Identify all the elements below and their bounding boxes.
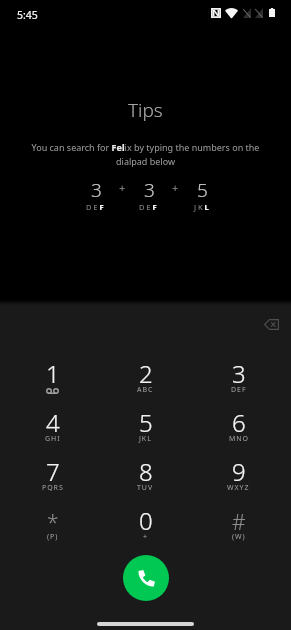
staticText: PQRS <box>42 483 64 493</box>
button[interactable]: 4 <box>6 406 99 455</box>
staticText: + <box>172 180 179 195</box>
staticText: # <box>232 508 246 537</box>
staticText: 3 <box>91 177 102 203</box>
button[interactable]: 0 <box>99 504 192 553</box>
staticText: 4 <box>46 406 60 439</box>
staticText: DEF <box>86 202 106 212</box>
staticText: 8 <box>139 455 153 488</box>
staticText: 9 <box>232 455 246 488</box>
button[interactable]: 5 <box>99 406 192 455</box>
staticText: (W) <box>232 532 246 542</box>
staticText: DEF <box>231 385 247 395</box>
staticText: + <box>143 532 148 542</box>
button[interactable]: Backspace <box>257 310 285 338</box>
staticText: DEF <box>139 202 159 212</box>
button[interactable]: # <box>192 504 285 553</box>
staticText: 3 <box>232 357 246 390</box>
button[interactable]: 2 <box>99 357 192 406</box>
staticText: GHI <box>45 434 61 444</box>
staticText: WXYZ <box>227 483 250 493</box>
staticText: 3 <box>144 177 155 203</box>
staticText: 5:45 <box>17 8 38 22</box>
button[interactable]: 3 <box>192 357 285 406</box>
staticText: 0 <box>139 504 153 537</box>
staticText: 5 <box>197 177 208 203</box>
staticText: (P) <box>47 532 59 542</box>
staticText: 5 <box>139 406 153 439</box>
button[interactable]: * <box>6 504 99 553</box>
staticText: 1 <box>46 357 60 390</box>
button[interactable]: 8 <box>99 455 192 504</box>
staticText: You can search for Felix by typing the n… <box>28 141 263 168</box>
staticText: 7 <box>46 455 60 488</box>
staticText: 6 <box>232 406 246 439</box>
staticText: + <box>119 180 126 195</box>
staticText: TUV <box>137 483 154 493</box>
staticText: 2 <box>139 357 153 390</box>
button[interactable]: 7 <box>6 455 99 504</box>
button[interactable]: 9 <box>192 455 285 504</box>
staticText: ABC <box>137 385 154 395</box>
button[interactable]: 6 <box>192 406 285 455</box>
staticText: JKL <box>139 434 152 444</box>
button[interactable]: 1 <box>6 357 99 406</box>
staticText: JKL <box>194 202 211 212</box>
staticText: Tips <box>128 97 163 123</box>
button[interactable]: Call <box>123 555 169 601</box>
staticText: * <box>47 508 59 537</box>
staticText: MNO <box>229 434 249 444</box>
